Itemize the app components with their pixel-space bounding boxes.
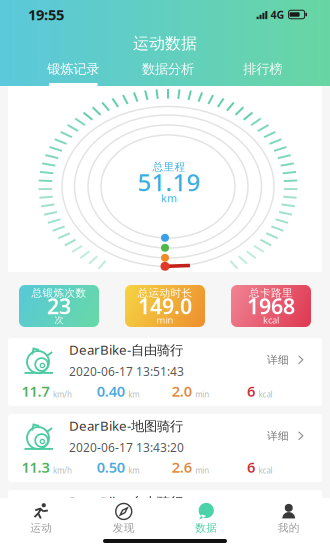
staticText: 次 — [54, 314, 63, 326]
staticText: DearBike-自由骑行 — [69, 341, 183, 358]
button[interactable]: 总锻炼次数 — [19, 285, 99, 327]
staticText: kcal — [258, 389, 272, 400]
staticText: 发现 — [113, 521, 135, 534]
staticText: 1968 — [247, 292, 295, 320]
staticText: 19:55 — [28, 5, 64, 24]
staticText: 0.50 — [97, 457, 125, 477]
staticText: min — [156, 314, 173, 326]
staticText: kcal — [258, 465, 272, 476]
staticText: 11.3 — [21, 457, 49, 477]
staticText: km/h — [53, 465, 72, 476]
staticText: km/h — [53, 389, 72, 400]
staticText: 锻炼记录 — [47, 61, 99, 77]
button[interactable]: DearBike-地图骑行 — [8, 414, 322, 482]
staticText: 149.0 — [138, 292, 192, 320]
staticText: 6 — [247, 381, 255, 401]
button[interactable]: 锻炼记录 — [26, 58, 121, 86]
staticText: 总锻炼次数 — [31, 286, 86, 299]
staticText: 6 — [247, 457, 255, 477]
staticText: 详细 — [267, 429, 289, 442]
button[interactable]: 数据 — [165, 498, 247, 539]
staticText: DearBike-地图骑行 — [69, 417, 183, 434]
staticText: 运动数据 — [133, 34, 197, 53]
staticText: 总里程 — [152, 160, 185, 173]
button[interactable]: 发现 — [82, 498, 165, 539]
staticText: 排行榜 — [243, 61, 282, 77]
staticText: 2.0 — [172, 381, 192, 401]
button[interactable]: 运动 — [0, 498, 82, 539]
button[interactable]: 总运动时长 — [125, 285, 205, 327]
staticText: km — [128, 541, 139, 550]
staticText: 23 — [47, 292, 71, 320]
staticText: 运动 — [30, 521, 52, 534]
staticText: km — [128, 389, 139, 400]
staticText: min — [195, 465, 209, 476]
staticText: kcal — [263, 314, 279, 326]
button[interactable]: 排行榜 — [215, 58, 310, 86]
staticText: km — [161, 191, 177, 205]
staticText: min — [195, 389, 209, 400]
staticText: 4G — [271, 7, 285, 22]
staticText: 11.7 — [21, 381, 49, 401]
staticText: 总运动时长 — [137, 286, 192, 299]
button[interactable]: 我的 — [247, 498, 330, 539]
staticText: DearBike-自由骑行 — [69, 493, 183, 510]
staticText: 详细 — [267, 505, 289, 518]
button[interactable]: 总卡路里 — [231, 285, 311, 327]
staticText: 0.35 — [97, 533, 125, 550]
button[interactable]: 数据分析 — [121, 58, 215, 86]
staticText: 我的 — [278, 521, 300, 534]
staticText: 2.6 — [172, 457, 192, 477]
staticText: 2020-06-17 13:51:43 — [69, 363, 184, 379]
staticText: 0.40 — [97, 381, 125, 401]
staticText: 2020-06-17 13:30:02 — [69, 515, 184, 531]
staticText: min — [195, 541, 209, 550]
staticText: 数据分析 — [142, 61, 194, 77]
button[interactable]: DearBike-自由骑行 — [8, 490, 322, 550]
staticText: 51.19 — [137, 166, 200, 198]
staticText: 总卡路里 — [249, 286, 293, 299]
button[interactable]: DearBike-自由骑行 — [8, 338, 322, 406]
staticText: 详细 — [267, 353, 289, 366]
staticText: 1.9 — [172, 533, 192, 550]
staticText: 2020-06-17 13:43:20 — [69, 439, 184, 455]
staticText: km — [128, 465, 139, 476]
staticText: 数据 — [195, 521, 217, 534]
